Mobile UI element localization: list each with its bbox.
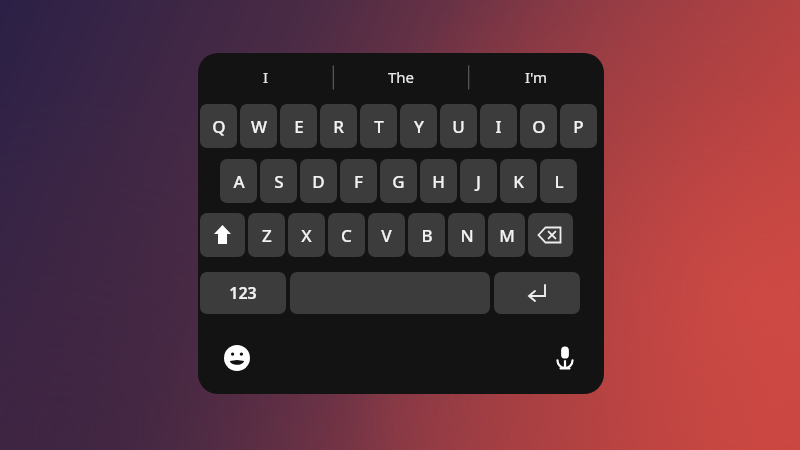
button[interactable]: I'm bbox=[469, 53, 604, 101]
staticText: H bbox=[432, 170, 445, 193]
button[interactable]: N bbox=[448, 213, 485, 257]
staticText: J bbox=[476, 170, 481, 193]
button[interactable]: 123 bbox=[200, 272, 286, 314]
staticText: V bbox=[381, 224, 392, 247]
button[interactable]: O bbox=[520, 104, 557, 148]
staticText: C bbox=[341, 224, 352, 247]
staticText: The bbox=[388, 67, 415, 87]
staticText: T bbox=[374, 115, 384, 138]
staticText: S bbox=[274, 170, 284, 193]
button[interactable]: I bbox=[480, 104, 517, 148]
button[interactable]: Q bbox=[200, 104, 237, 148]
button[interactable]: M bbox=[488, 213, 525, 257]
staticText: O bbox=[532, 115, 546, 138]
button[interactable]: U bbox=[440, 104, 477, 148]
button[interactable]: H bbox=[420, 159, 457, 203]
button[interactable]: Enter bbox=[494, 272, 580, 314]
button[interactable]: Shift bbox=[200, 213, 245, 257]
button[interactable]: F bbox=[340, 159, 377, 203]
button[interactable]: A bbox=[220, 159, 257, 203]
button[interactable]: W bbox=[240, 104, 277, 148]
button[interactable]: D bbox=[300, 159, 337, 203]
button[interactable]: J bbox=[460, 159, 497, 203]
button[interactable]: T bbox=[360, 104, 397, 148]
button[interactable]: I bbox=[198, 53, 334, 101]
staticText: X bbox=[301, 224, 312, 247]
staticText: B bbox=[421, 224, 433, 247]
button[interactable]: R bbox=[320, 104, 357, 148]
button[interactable]: S bbox=[260, 159, 297, 203]
staticText: G bbox=[392, 170, 405, 193]
button[interactable]: G bbox=[380, 159, 417, 203]
staticText: U bbox=[452, 115, 465, 138]
button[interactable]: B bbox=[408, 213, 445, 257]
button[interactable]: C bbox=[328, 213, 365, 257]
staticText: Q bbox=[212, 115, 226, 138]
staticText: E bbox=[294, 115, 304, 138]
staticText: F bbox=[354, 170, 363, 193]
button[interactable]: E bbox=[280, 104, 317, 148]
staticText: I bbox=[263, 67, 269, 87]
staticText: A bbox=[233, 170, 245, 193]
staticText: D bbox=[312, 170, 325, 193]
staticText: I bbox=[495, 115, 502, 138]
button[interactable]: L bbox=[540, 159, 577, 203]
button[interactable]: V bbox=[368, 213, 405, 257]
button[interactable]: K bbox=[500, 159, 537, 203]
staticText: L bbox=[554, 170, 564, 193]
button[interactable]: Z bbox=[248, 213, 285, 257]
button[interactable]: X bbox=[288, 213, 325, 257]
staticText: M bbox=[499, 224, 515, 247]
button[interactable]: Y bbox=[400, 104, 437, 148]
staticText: Z bbox=[262, 224, 272, 247]
button[interactable]: Voice input bbox=[544, 336, 586, 378]
staticText: R bbox=[333, 115, 344, 138]
button[interactable]: Backspace bbox=[528, 213, 573, 257]
button[interactable]: P bbox=[560, 104, 597, 148]
staticText: I'm bbox=[525, 67, 548, 87]
button[interactable]: Emoji bbox=[216, 337, 258, 379]
button[interactable]: The bbox=[334, 53, 469, 101]
staticText: N bbox=[460, 224, 474, 247]
staticText: Y bbox=[414, 115, 424, 138]
staticText: 123 bbox=[229, 282, 257, 304]
staticText: K bbox=[513, 170, 524, 193]
staticText: W bbox=[251, 115, 267, 138]
staticText: P bbox=[573, 115, 584, 138]
